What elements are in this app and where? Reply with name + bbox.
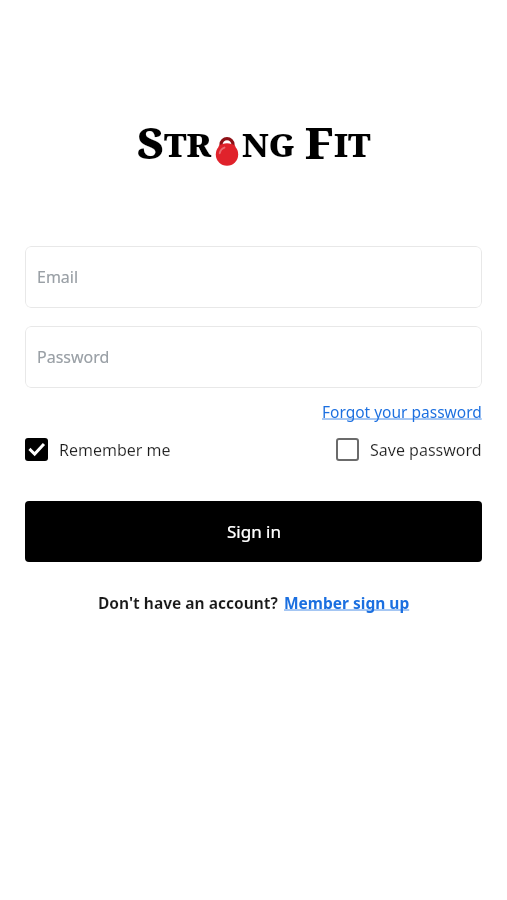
staticText: Password bbox=[37, 346, 110, 368]
button[interactable]: Remember me bbox=[25, 438, 171, 461]
staticText: IT bbox=[334, 122, 371, 167]
staticText: Member sign up bbox=[284, 592, 410, 613]
staticText: Don't have an account? bbox=[98, 592, 278, 613]
other: StrongFit bbox=[137, 112, 371, 168]
staticText: Email bbox=[37, 266, 79, 288]
button[interactable]: Password bbox=[25, 326, 482, 388]
staticText: Remember me bbox=[59, 439, 171, 461]
button[interactable]: Forgot your password bbox=[322, 401, 482, 422]
staticText: TR bbox=[164, 122, 212, 167]
staticText: NG bbox=[242, 122, 296, 167]
staticText: Save password bbox=[370, 439, 482, 461]
button[interactable]: Sign in bbox=[25, 501, 482, 562]
staticText: Forgot your password bbox=[322, 401, 482, 422]
staticText: F bbox=[305, 112, 334, 168]
button[interactable]: Member sign up bbox=[284, 592, 410, 613]
staticText: Sign in bbox=[227, 520, 281, 543]
staticText: S bbox=[137, 112, 164, 168]
button[interactable]: Save password bbox=[336, 438, 482, 461]
button[interactable]: Email bbox=[25, 246, 482, 308]
